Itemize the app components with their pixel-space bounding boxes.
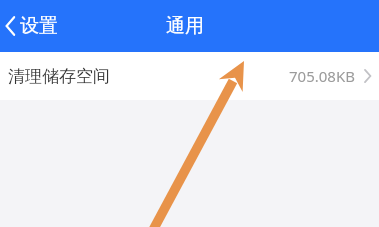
staticText: 705.08KB (289, 66, 355, 86)
other: Annotation arrow (0, 0, 379, 227)
button[interactable]: 清理储存空间 (0, 52, 379, 100)
staticText: 设置 (20, 14, 58, 38)
staticText: 清理储存空间 (8, 66, 110, 87)
button[interactable]: 设置 (0, 0, 66, 52)
staticText: 通用 (166, 14, 204, 38)
